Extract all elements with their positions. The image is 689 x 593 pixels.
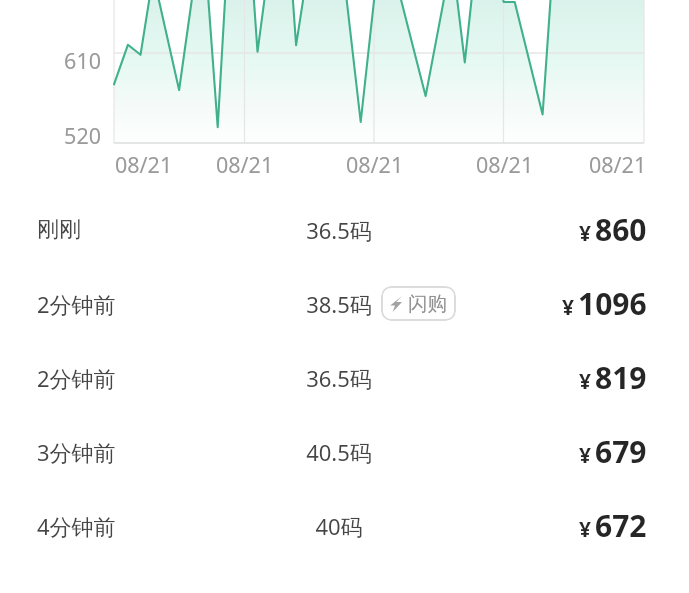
staticText: 672 <box>595 505 647 546</box>
staticText: 610 <box>41 46 101 75</box>
staticText: 4分钟前 <box>37 511 116 541</box>
staticText: 08/21 <box>346 150 404 179</box>
staticText: 08/21 <box>589 150 647 179</box>
staticText: 闪购 <box>408 291 447 316</box>
button[interactable]: Flash sale <box>381 286 456 321</box>
staticText: ¥ <box>579 515 592 544</box>
staticText: 3分钟前 <box>37 437 116 467</box>
staticText: 08/21 <box>476 150 534 179</box>
staticText: ¥ <box>562 293 575 322</box>
staticText: ¥ <box>579 367 592 396</box>
button[interactable]: 2分钟前 <box>0 341 689 415</box>
staticText: 2分钟前 <box>37 363 116 393</box>
staticText: 1096 <box>578 283 647 324</box>
button[interactable]: 2分钟前 <box>0 267 689 341</box>
staticText: 36.5码 <box>279 215 399 245</box>
staticText: 40码 <box>279 511 399 541</box>
staticText: 08/21 <box>115 150 173 179</box>
staticText: 860 <box>595 209 647 250</box>
staticText: 36.5码 <box>279 363 399 393</box>
button[interactable]: 3分钟前 <box>0 415 689 489</box>
button[interactable]: 4分钟前 <box>0 489 689 563</box>
staticText: ¥ <box>579 441 592 470</box>
staticText: 40.5码 <box>279 437 399 467</box>
staticText: 520 <box>41 121 101 150</box>
staticText: ¥ <box>579 219 592 248</box>
staticText: 819 <box>595 357 647 398</box>
other: Flash sale <box>390 296 402 312</box>
staticText: 08/21 <box>216 150 274 179</box>
staticText: 刚刚 <box>37 216 81 244</box>
staticText: 679 <box>595 431 647 472</box>
staticText: 2分钟前 <box>37 289 116 319</box>
button[interactable]: 刚刚 <box>0 193 689 267</box>
staticText: 38.5码 <box>279 289 399 319</box>
